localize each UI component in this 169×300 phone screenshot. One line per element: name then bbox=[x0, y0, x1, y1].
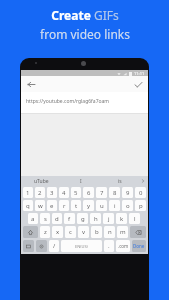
staticText: from video links bbox=[40, 26, 130, 42]
staticText: Done bbox=[133, 243, 145, 249]
staticText: c bbox=[69, 228, 72, 236]
button[interactable]: l bbox=[129, 213, 140, 224]
button[interactable]: 9 bbox=[122, 187, 133, 198]
button[interactable]: 8 bbox=[109, 187, 120, 198]
button[interactable]: m bbox=[117, 226, 128, 238]
button[interactable]: x bbox=[52, 226, 63, 238]
button[interactable]: . bbox=[104, 240, 114, 252]
button[interactable]: I bbox=[61, 176, 100, 186]
button[interactable]: a bbox=[28, 213, 38, 224]
staticText: . bbox=[108, 242, 110, 250]
staticText: q bbox=[26, 202, 30, 210]
button[interactable]: 0 bbox=[135, 187, 146, 198]
staticText: e bbox=[50, 202, 54, 210]
staticText: s bbox=[44, 215, 47, 223]
button[interactable]: Back bbox=[25, 78, 37, 90]
button[interactable]: .com bbox=[116, 240, 130, 252]
staticText: v bbox=[82, 228, 86, 236]
staticText: z bbox=[44, 228, 47, 236]
staticText: https://youtube.com/rglag6fa7oam bbox=[26, 98, 109, 105]
button[interactable]: 2 bbox=[35, 187, 45, 198]
button[interactable]: e bbox=[47, 200, 57, 211]
button[interactable]: z bbox=[40, 226, 50, 238]
staticText: is bbox=[118, 178, 122, 185]
button[interactable]: w bbox=[35, 200, 45, 211]
staticText: / bbox=[53, 242, 56, 250]
button[interactable]: More suggestions bbox=[139, 176, 147, 186]
button[interactable]: Backspace bbox=[130, 226, 146, 238]
staticText: 5 bbox=[74, 189, 78, 197]
button[interactable]: u bbox=[96, 200, 107, 211]
button[interactable]: i bbox=[109, 200, 120, 211]
staticText: t bbox=[75, 202, 78, 210]
staticText: 8 bbox=[113, 189, 117, 197]
button[interactable]: b bbox=[91, 226, 102, 238]
button[interactable]: Done bbox=[132, 240, 146, 252]
staticText: b bbox=[95, 228, 99, 236]
staticText: f bbox=[68, 215, 71, 223]
staticText: r bbox=[63, 202, 66, 210]
button[interactable]: Keyboard settings bbox=[36, 240, 47, 252]
button[interactable]: c bbox=[65, 226, 76, 238]
staticText: 9 bbox=[126, 189, 130, 197]
staticText: Create GIFs bbox=[51, 7, 119, 23]
button[interactable]: g bbox=[77, 213, 88, 224]
button[interactable]: r bbox=[59, 200, 69, 211]
staticText: 6 bbox=[87, 189, 91, 197]
button[interactable]: 1 bbox=[23, 187, 33, 198]
button[interactable]: n bbox=[104, 226, 115, 238]
button[interactable]: https://youtube.com/rglag6fa7oam bbox=[21, 92, 148, 114]
button[interactable]: q bbox=[23, 200, 33, 211]
staticText: I bbox=[80, 178, 82, 185]
button[interactable]: f bbox=[64, 213, 75, 224]
staticText: m bbox=[120, 228, 126, 236]
staticText: y bbox=[87, 202, 91, 210]
button[interactable]: Emoji keyboard bbox=[23, 240, 34, 252]
staticText: u bbox=[100, 202, 104, 210]
button[interactable]: 3 bbox=[47, 187, 57, 198]
button[interactable]: h bbox=[90, 213, 101, 224]
staticText: i bbox=[114, 202, 116, 210]
staticText: uTube bbox=[34, 178, 49, 185]
button[interactable]: 4 bbox=[59, 187, 69, 198]
staticText: j bbox=[108, 215, 110, 223]
staticText: 0 bbox=[139, 189, 143, 197]
button[interactable]: Shift bbox=[23, 226, 38, 238]
staticText: a bbox=[31, 215, 35, 223]
staticText: g bbox=[81, 215, 85, 223]
staticText: p bbox=[139, 202, 143, 210]
button[interactable]: uTube bbox=[22, 176, 61, 186]
button[interactable]: 5 bbox=[71, 187, 81, 198]
button[interactable]: s bbox=[40, 213, 50, 224]
staticText: l bbox=[134, 215, 136, 223]
button[interactable]: y bbox=[83, 200, 94, 211]
button[interactable]: EN(US) bbox=[61, 240, 102, 252]
staticText: h bbox=[94, 215, 98, 223]
button[interactable]: j bbox=[103, 213, 114, 224]
button[interactable]: 7 bbox=[96, 187, 107, 198]
button[interactable]: / bbox=[49, 240, 59, 252]
button[interactable]: v bbox=[78, 226, 89, 238]
staticText: 3 bbox=[50, 189, 54, 197]
staticText: EN(US) bbox=[75, 244, 88, 249]
button[interactable]: o bbox=[122, 200, 133, 211]
button[interactable]: is bbox=[100, 176, 139, 186]
staticText: 11:11 bbox=[134, 71, 145, 76]
staticText: d bbox=[55, 215, 59, 223]
staticText: n bbox=[108, 228, 112, 236]
staticText: x bbox=[56, 228, 60, 236]
button[interactable]: k bbox=[116, 213, 127, 224]
staticText: 7 bbox=[100, 189, 104, 197]
button[interactable]: p bbox=[135, 200, 146, 211]
staticText: 1 bbox=[26, 189, 30, 197]
staticText: o bbox=[126, 202, 130, 210]
staticText: 2 bbox=[38, 189, 42, 197]
button[interactable]: 6 bbox=[83, 187, 94, 198]
button[interactable]: t bbox=[71, 200, 81, 211]
button[interactable]: d bbox=[52, 213, 62, 224]
staticText: .com bbox=[118, 243, 129, 249]
button[interactable]: Confirm bbox=[132, 78, 144, 90]
staticText: w bbox=[38, 202, 43, 210]
staticText: k bbox=[120, 215, 124, 223]
staticText: 4 bbox=[62, 189, 66, 197]
